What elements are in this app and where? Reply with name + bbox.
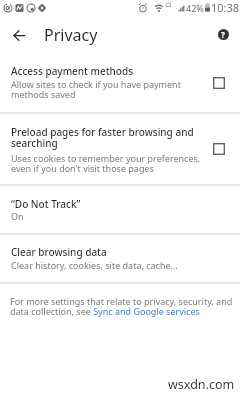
staticText: 42% <box>186 2 204 14</box>
button[interactable]: Preload pages for faster browsing and se… <box>0 114 240 185</box>
staticText: Clear history, cookies, site data, cache… <box>11 259 178 271</box>
button[interactable]: “Do Not Track” <box>0 186 240 233</box>
staticText: 10:38 <box>211 0 240 15</box>
staticText: On <box>11 210 24 222</box>
button[interactable]: Clear browsing data <box>0 235 240 282</box>
staticText: Access payment methods <box>11 64 134 78</box>
staticText: “Do Not Track” <box>11 197 81 211</box>
button[interactable]: For more settings that relate to privacy… <box>0 284 240 324</box>
staticText: Preload pages for faster browsing and se… <box>11 125 194 150</box>
staticText: ? <box>221 29 225 40</box>
button[interactable]: Navigate back <box>7 16 31 56</box>
staticText: Privacy <box>44 24 98 46</box>
button[interactable]: Help and feedback <box>211 14 235 54</box>
staticText: Uses cookies to remember your preference… <box>11 152 201 175</box>
staticText: Clear browsing data <box>11 245 107 259</box>
staticText: For more settings that relate to privacy… <box>10 295 240 318</box>
button[interactable]: Access payment methods <box>0 56 240 112</box>
staticText: wsxdn.com <box>168 376 235 393</box>
staticText: Allow sites to check if you have payment… <box>11 78 181 101</box>
